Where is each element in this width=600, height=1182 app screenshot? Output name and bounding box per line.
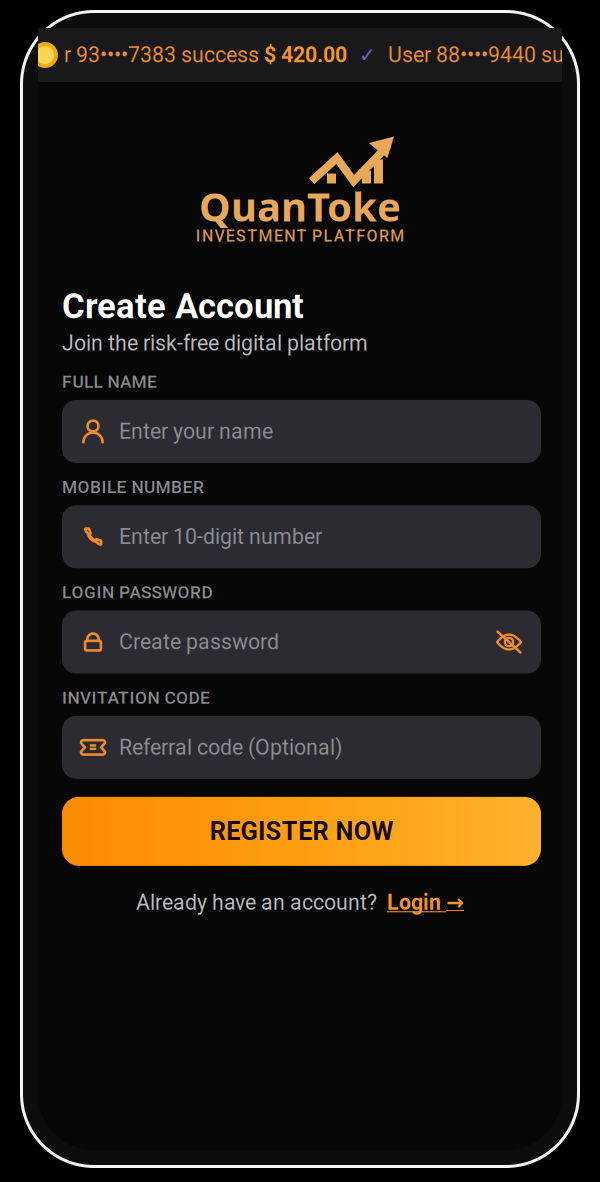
staticText: REGISTER NOW — [210, 816, 393, 846]
staticText: FULL NAME — [62, 372, 157, 392]
staticText: Join the risk-free digital platform — [62, 331, 368, 356]
button[interactable]: Enter your name — [62, 400, 541, 463]
staticText: LOGIN PASSWORD — [62, 582, 212, 602]
staticText: INVITATION CODE — [62, 688, 210, 708]
staticText: Enter 10-digit number — [119, 524, 322, 549]
staticText: r 93••••7383 success — [64, 42, 264, 67]
button[interactable]: Enter 10-digit number — [62, 505, 541, 568]
staticText: ✓ — [359, 43, 376, 67]
button[interactable]: Referral code (Optional) — [62, 716, 541, 779]
button[interactable]: Login → — [387, 890, 464, 915]
staticText: Create Account — [62, 286, 304, 327]
button[interactable]: Create password — [62, 611, 541, 674]
staticText: Enter your name — [119, 419, 273, 444]
button[interactable]: REGISTER NOW — [62, 797, 541, 866]
staticText: MOBILE NUMBER — [62, 477, 204, 497]
staticText: QuanToke — [199, 179, 401, 232]
staticText: Referral code (Optional) — [119, 735, 342, 760]
staticText: Login → — [387, 890, 464, 915]
staticText: Create password — [119, 630, 279, 655]
staticText: Already have an account? — [136, 890, 377, 915]
staticText: $ 420.00 — [264, 42, 347, 67]
staticText: INVESTMENT PLATFORM — [196, 227, 404, 245]
staticText: User 88••••9440 success — [388, 42, 600, 67]
